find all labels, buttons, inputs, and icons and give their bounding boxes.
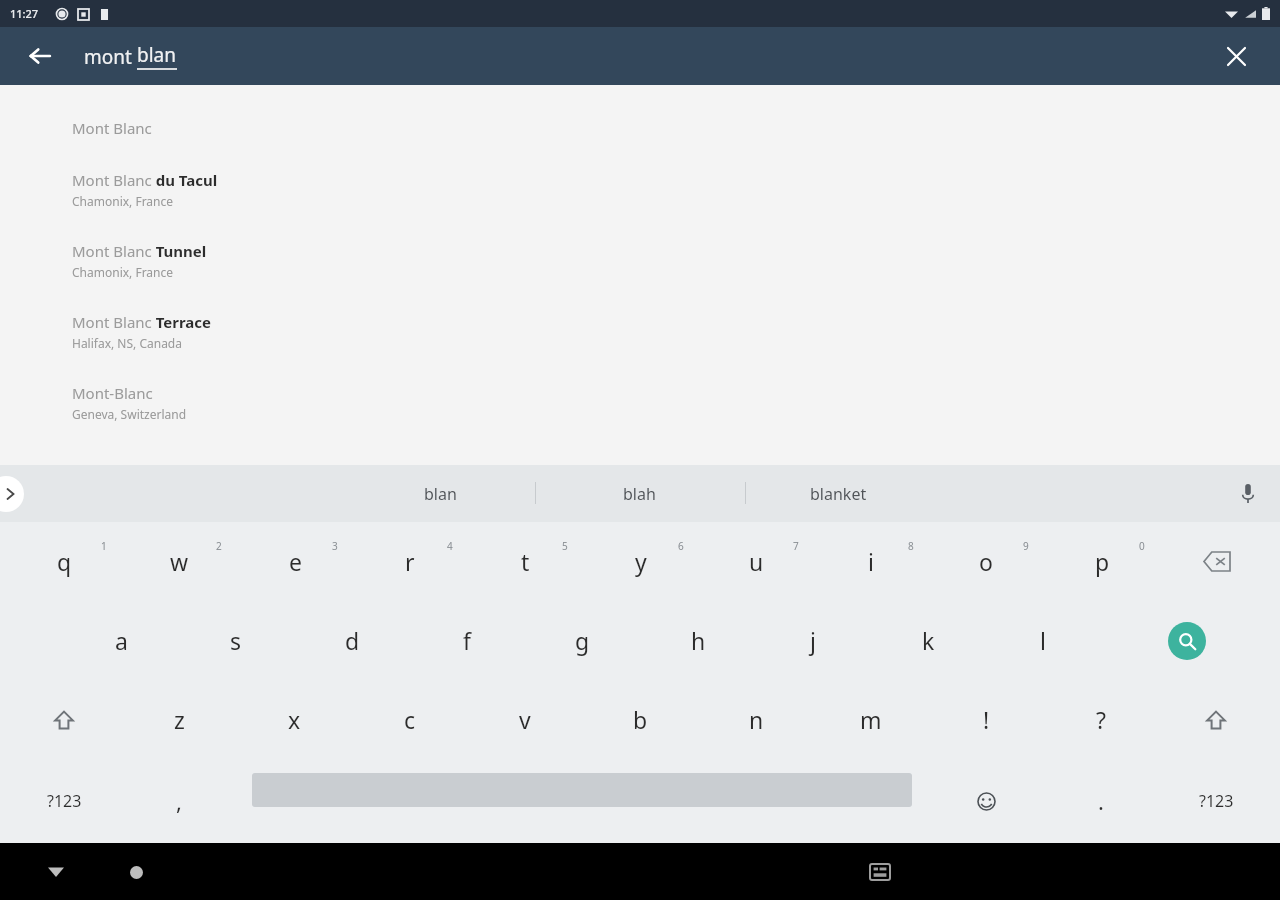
button[interactable]: g xyxy=(527,601,637,680)
button[interactable]: r xyxy=(355,522,465,601)
staticText: i xyxy=(868,546,874,577)
staticText: c xyxy=(404,704,416,735)
button[interactable]: d xyxy=(297,601,407,680)
button[interactable]: Back xyxy=(34,850,78,894)
button[interactable]: m xyxy=(816,680,926,759)
staticText: 6 xyxy=(678,539,684,553)
staticText: o xyxy=(979,546,993,577)
staticText: t xyxy=(521,546,530,577)
staticText: w xyxy=(170,546,189,577)
staticText: e xyxy=(289,546,302,577)
button[interactable]: Mont Blanc Tunnel xyxy=(0,217,1280,288)
staticText: ?123 xyxy=(1199,790,1234,812)
button[interactable]: i xyxy=(816,522,926,601)
button[interactable]: t xyxy=(470,522,580,601)
staticText: mont xyxy=(84,44,137,70)
button[interactable]: Back xyxy=(20,36,60,76)
staticText: x xyxy=(288,704,301,735)
button[interactable]: v xyxy=(470,680,580,759)
button[interactable]: blan xyxy=(370,465,510,522)
button[interactable]: ? xyxy=(1046,680,1156,759)
staticText: blah xyxy=(623,483,656,505)
staticText: v xyxy=(519,704,531,735)
staticText: d xyxy=(345,625,360,656)
staticText: 9 xyxy=(1023,539,1029,553)
button[interactable]: Home xyxy=(114,850,158,894)
staticText: blan xyxy=(137,42,176,68)
staticText: ! xyxy=(983,704,990,735)
button[interactable]: z xyxy=(124,680,234,759)
button[interactable]: c xyxy=(355,680,465,759)
staticText: Mont-Blanc xyxy=(72,383,153,403)
staticText: p xyxy=(1095,546,1110,577)
staticText: Halifax, NS, Canada xyxy=(72,335,182,351)
button[interactable]: s xyxy=(181,601,291,680)
button[interactable]: x xyxy=(239,680,349,759)
button[interactable]: Shift xyxy=(1161,680,1271,759)
button[interactable]: ! xyxy=(931,680,1041,759)
button[interactable]: Switch keyboard xyxy=(858,850,902,894)
staticText: , xyxy=(176,786,182,816)
button[interactable]: k xyxy=(873,601,983,680)
button[interactable]: a xyxy=(66,601,176,680)
button[interactable]: , xyxy=(124,759,234,843)
button[interactable]: Search xyxy=(1132,601,1242,680)
button[interactable]: p xyxy=(1047,522,1157,601)
button[interactable]: h xyxy=(643,601,753,680)
button[interactable]: j xyxy=(758,601,868,680)
staticText: r xyxy=(405,546,415,577)
button[interactable]: o xyxy=(931,522,1041,601)
staticText: f xyxy=(463,625,471,656)
staticText: Mont Blanc Tunnel xyxy=(72,241,207,261)
button[interactable]: Clear search xyxy=(1216,36,1256,76)
button[interactable]: b xyxy=(585,680,695,759)
staticText: Mont Blanc xyxy=(72,118,152,138)
button[interactable]: . xyxy=(1046,759,1156,843)
button[interactable]: Mont Blanc Terrace xyxy=(0,288,1280,359)
staticText: j xyxy=(810,625,816,656)
staticText: 5 xyxy=(562,539,568,553)
button[interactable]: u xyxy=(701,522,811,601)
button[interactable]: l xyxy=(988,601,1098,680)
staticText: s xyxy=(230,625,242,656)
staticText: u xyxy=(749,546,764,577)
staticText: ?123 xyxy=(47,790,82,812)
button[interactable]: e xyxy=(240,522,350,601)
button[interactable]: f xyxy=(412,601,522,680)
staticText: n xyxy=(749,704,764,735)
button[interactable]: Mont Blanc du Tacul xyxy=(0,146,1280,217)
button[interactable]: Emoji xyxy=(931,759,1041,843)
staticText: 11:27 xyxy=(10,6,39,21)
staticText: 0 xyxy=(1139,539,1145,553)
staticText: 8 xyxy=(908,539,914,553)
staticText: 2 xyxy=(216,539,222,553)
button[interactable]: q xyxy=(9,522,119,601)
button[interactable]: ?123 xyxy=(9,759,119,843)
button[interactable]: n xyxy=(701,680,811,759)
staticText: b xyxy=(633,704,648,735)
button[interactable]: ?123 xyxy=(1161,759,1271,843)
staticText: h xyxy=(691,625,706,656)
staticText: blanket xyxy=(810,483,867,505)
button[interactable]: Mont Blanc xyxy=(0,85,1280,146)
staticText: 3 xyxy=(332,539,338,553)
staticText: blan xyxy=(424,483,457,505)
button[interactable]: Expand xyxy=(0,476,24,512)
staticText: 7 xyxy=(793,539,799,553)
button[interactable]: Voice input xyxy=(1226,472,1270,516)
button[interactable]: blah xyxy=(569,465,709,522)
button[interactable]: Mont-Blanc xyxy=(0,359,1280,430)
staticText: g xyxy=(575,625,590,656)
staticText: Chamonix, France xyxy=(72,264,174,280)
button[interactable]: Shift xyxy=(9,680,119,759)
staticText: q xyxy=(57,546,72,577)
button[interactable]: Backspace xyxy=(1162,522,1272,601)
staticText: z xyxy=(174,704,185,735)
button[interactable]: blanket xyxy=(768,465,908,522)
staticText: 1 xyxy=(101,539,107,553)
button[interactable]: w xyxy=(124,522,234,601)
staticText: l xyxy=(1040,625,1046,656)
staticText: k xyxy=(922,625,935,656)
button[interactable]: y xyxy=(586,522,696,601)
